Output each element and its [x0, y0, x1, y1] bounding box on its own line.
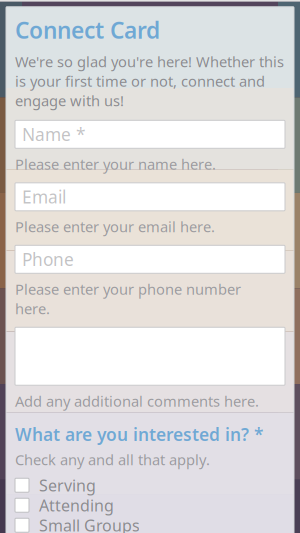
staticText: Please enter your phone number here.: [15, 279, 241, 318]
staticText: Small Groups: [39, 515, 140, 533]
staticText: Connect Card: [15, 15, 160, 45]
button[interactable]: Menu: [0, 0, 40, 2]
button[interactable]: Small Groups: [15, 515, 285, 533]
button[interactable]: Email: [15, 183, 285, 211]
button[interactable]: Name *: [15, 120, 285, 148]
button[interactable]: Phone: [15, 245, 285, 273]
staticText: Attending: [39, 495, 114, 516]
staticText: Selah Covenant Church: [25, 0, 274, 3]
staticText: What are you interested in? *: [15, 423, 263, 446]
button[interactable]: Attending: [15, 495, 285, 515]
staticText: Email: [22, 185, 66, 208]
staticText: Add any additional comments here.: [15, 391, 259, 411]
staticText: Check any and all that apply.: [15, 450, 210, 469]
staticText: Name *: [22, 123, 86, 146]
staticText: Phone: [22, 248, 74, 271]
staticText: Please enter your email here.: [15, 217, 215, 236]
staticText: Serving: [39, 475, 96, 496]
button[interactable]: [15, 327, 285, 385]
button[interactable]: Serving: [15, 475, 285, 495]
staticText: Please enter your name here.: [15, 154, 216, 174]
staticText: We're so glad you're here! Whether this …: [15, 52, 284, 110]
